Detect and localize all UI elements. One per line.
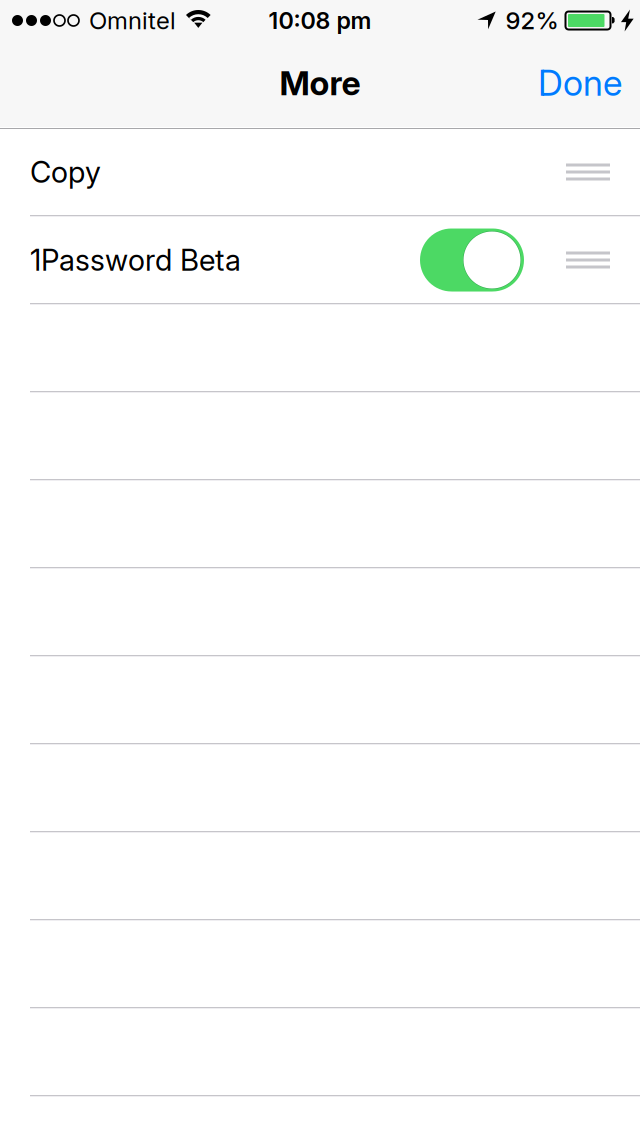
button[interactable]: Done [514,39,640,127]
staticText: Copy [30,154,101,190]
staticText: 10:08 pm [268,6,371,35]
button[interactable]: Reorder 1Password Beta [551,217,625,303]
button[interactable]: Reorder Copy [551,129,625,215]
button[interactable]: 1Password Beta [0,217,640,303]
staticText: Omnitel [89,6,176,35]
staticText: More [279,63,360,103]
staticText: 92% [505,6,558,35]
staticText: Done [538,62,622,104]
button[interactable]: Copy [0,129,640,215]
button[interactable]: 1Password Beta, on [414,217,530,303]
staticText: 1Password Beta [30,242,241,278]
